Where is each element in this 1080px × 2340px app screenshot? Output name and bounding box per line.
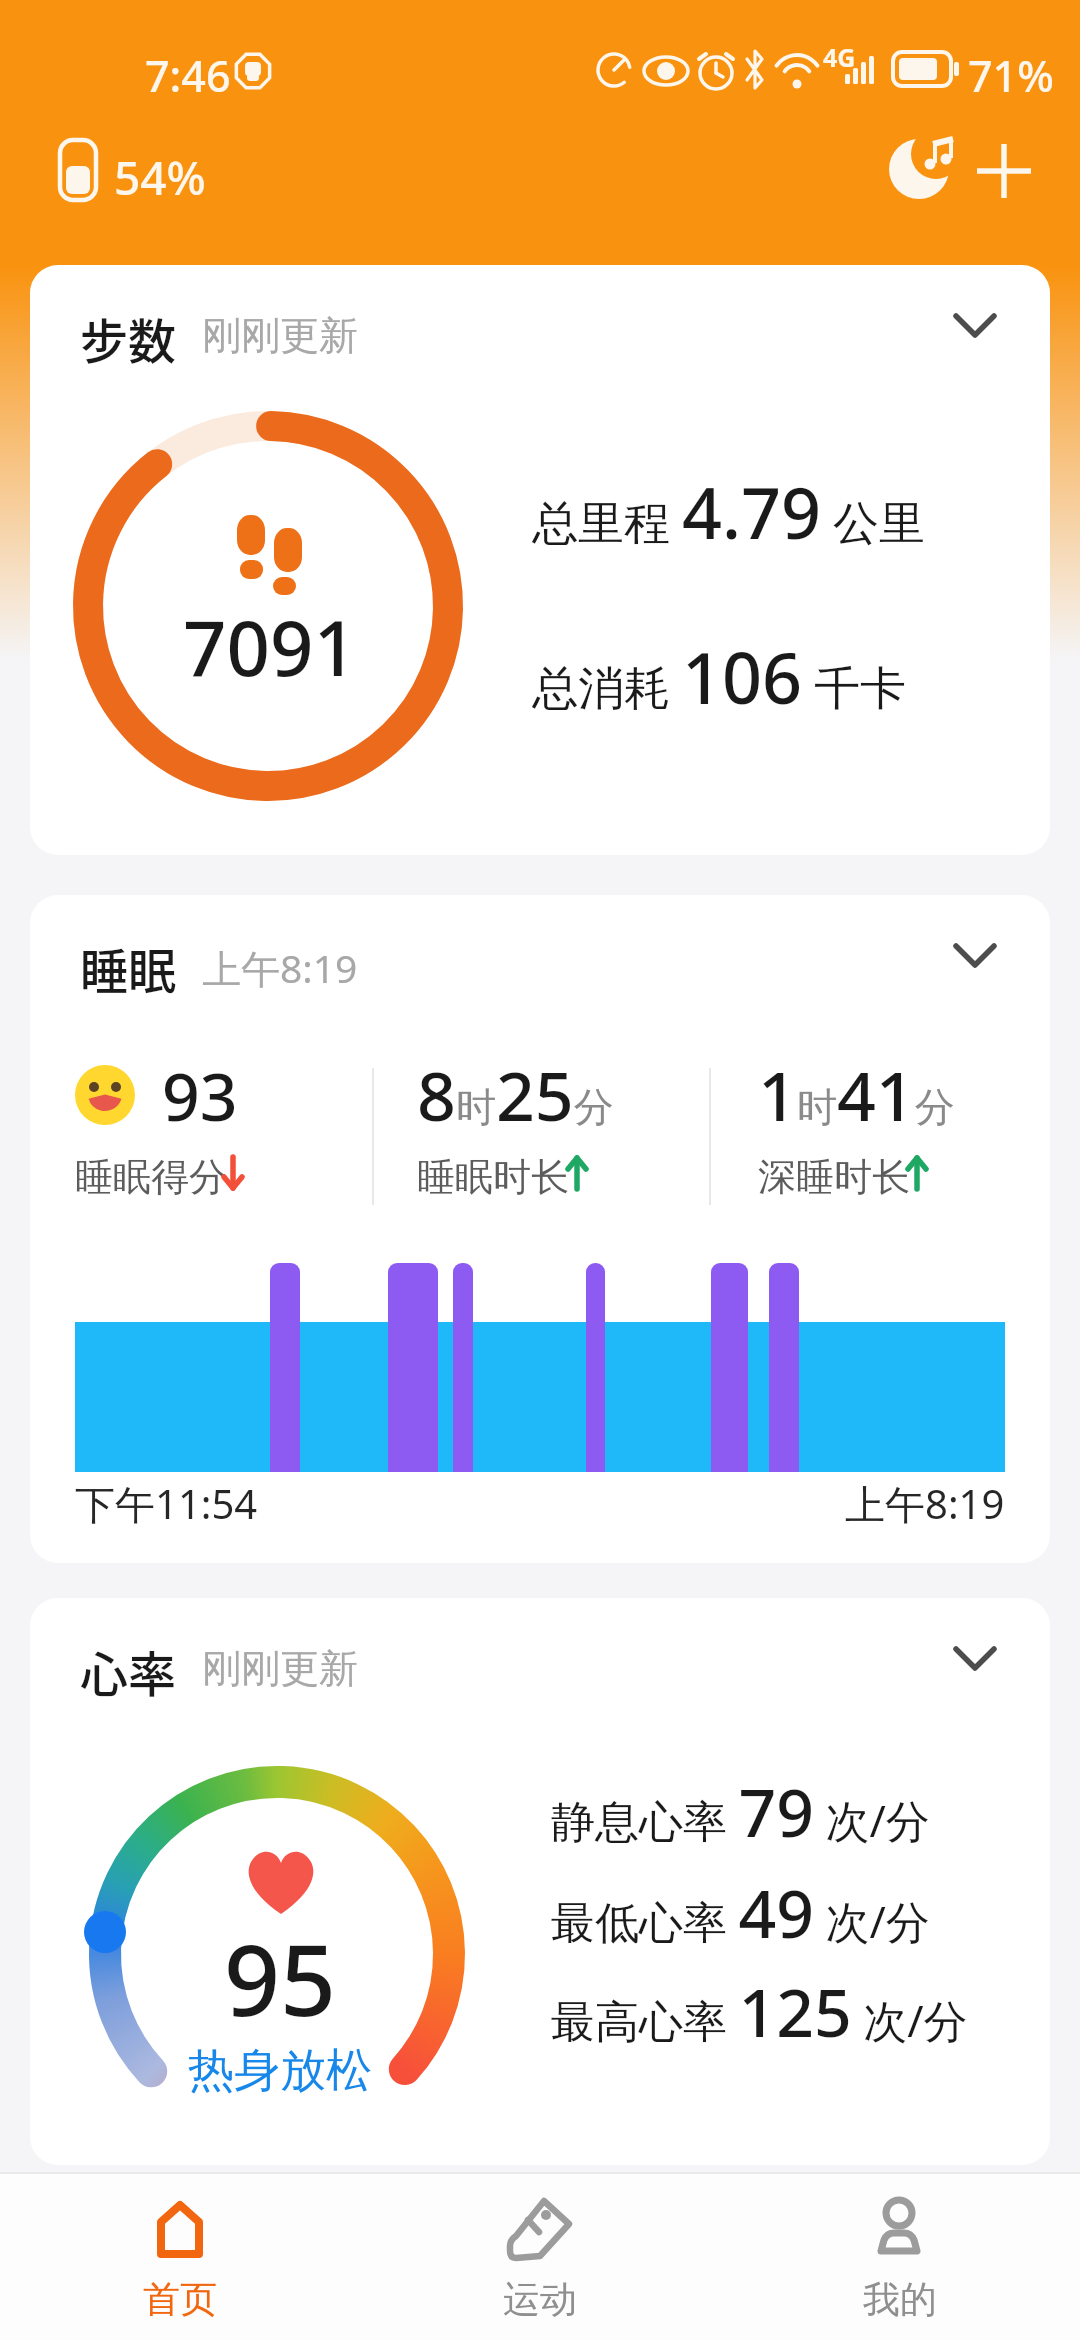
staticText: 刚刚更新 (202, 1644, 358, 1693)
staticText: 上午8:19 (202, 941, 358, 994)
button[interactable]: 我的 (820, 2182, 980, 2332)
staticText: 刚刚更新 (202, 311, 358, 360)
staticText: 总里程 4.79 公里 (532, 464, 926, 559)
staticText: 最高心率 125 次/分 (551, 1966, 968, 2046)
staticText: 静息心率 79 次/分 (551, 1766, 930, 1846)
button[interactable]: 运动 (460, 2182, 620, 2332)
button[interactable] (880, 128, 960, 208)
staticText: 1时41分 (758, 1048, 955, 1128)
button[interactable]: 心率 (30, 1598, 1050, 2165)
staticText: 运动 (503, 2276, 577, 2323)
staticText: 热身放松 (188, 2042, 372, 2100)
button[interactable]: 睡眠 (30, 895, 1050, 1563)
staticText: 7:46 (145, 46, 231, 105)
staticText: 93 (162, 1050, 238, 1140)
staticText: 心率 (80, 1636, 177, 1706)
staticText: 总消耗 106 千卡 (532, 629, 907, 724)
staticText: 71% (968, 46, 1054, 105)
staticText: 睡眠 (80, 933, 177, 1003)
button[interactable]: 步数 (30, 265, 1050, 855)
staticText: 首页 (143, 2276, 217, 2323)
button[interactable]: 首页 (100, 2182, 260, 2332)
staticText: 睡眠时长 (417, 1153, 569, 1201)
staticText: 4G (823, 40, 856, 74)
staticText: 8时25分 (417, 1048, 614, 1128)
staticText: 我的 (863, 2276, 937, 2323)
staticText: 最低心率 49 次/分 (551, 1867, 930, 1947)
staticText: 下午11:54 (75, 1476, 258, 1531)
staticText: 95 (224, 1911, 337, 2041)
staticText: 深睡时长 (758, 1153, 910, 1201)
staticText: 54% (114, 146, 206, 209)
staticText: 步数 (80, 303, 177, 373)
staticText: 睡眠得分 (75, 1153, 227, 1201)
staticText: 上午8:19 (845, 1476, 1005, 1531)
button[interactable] (972, 139, 1036, 203)
staticText: 7091 (183, 595, 357, 695)
